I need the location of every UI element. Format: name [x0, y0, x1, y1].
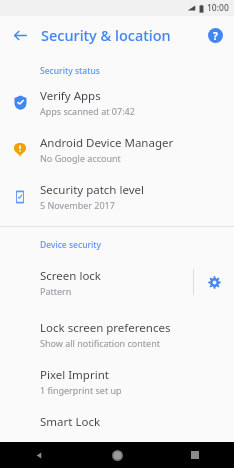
staticText: Security patch level: [40, 182, 144, 198]
staticText: 1 fingerprint set up: [40, 384, 122, 396]
button[interactable]: Android Device Manager: [0, 126, 234, 173]
button[interactable]: Verify Apps: [0, 79, 234, 126]
button[interactable]: Security patch level: [0, 173, 234, 220]
button[interactable]: Home: [78, 442, 156, 468]
staticText: No Google account: [40, 152, 121, 164]
staticText: ?: [213, 29, 218, 43]
button[interactable]: Help: [200, 20, 230, 50]
button[interactable]: Smart Lock: [0, 405, 234, 439]
staticText: 10:00: [207, 2, 229, 14]
staticText: Apps scanned at 07:42: [40, 105, 135, 117]
staticText: Pattern: [40, 285, 72, 297]
button[interactable]: Screen lock: [0, 253, 234, 311]
staticText: Screen lock: [40, 268, 102, 284]
button[interactable]: Recent apps: [156, 442, 234, 468]
staticText: Show all notification content: [40, 337, 160, 349]
button[interactable]: Lock screen preferences: [0, 311, 234, 358]
staticText: Device security: [40, 239, 102, 251]
button[interactable]: Screen lock settings: [194, 262, 234, 302]
staticText: Android Device Manager: [40, 135, 174, 151]
button[interactable]: Pixel Imprint: [0, 358, 234, 405]
button[interactable]: Back: [4, 19, 36, 51]
staticText: Security & location: [41, 25, 171, 45]
staticText: 5 November 2017: [40, 199, 115, 211]
button[interactable]: Back: [0, 442, 78, 468]
staticText: Pixel Imprint: [40, 367, 109, 383]
staticText: Smart Lock: [40, 414, 101, 430]
staticText: Lock screen preferences: [40, 320, 171, 336]
staticText: Verify Apps: [40, 88, 101, 104]
staticText: Security status: [40, 65, 100, 77]
